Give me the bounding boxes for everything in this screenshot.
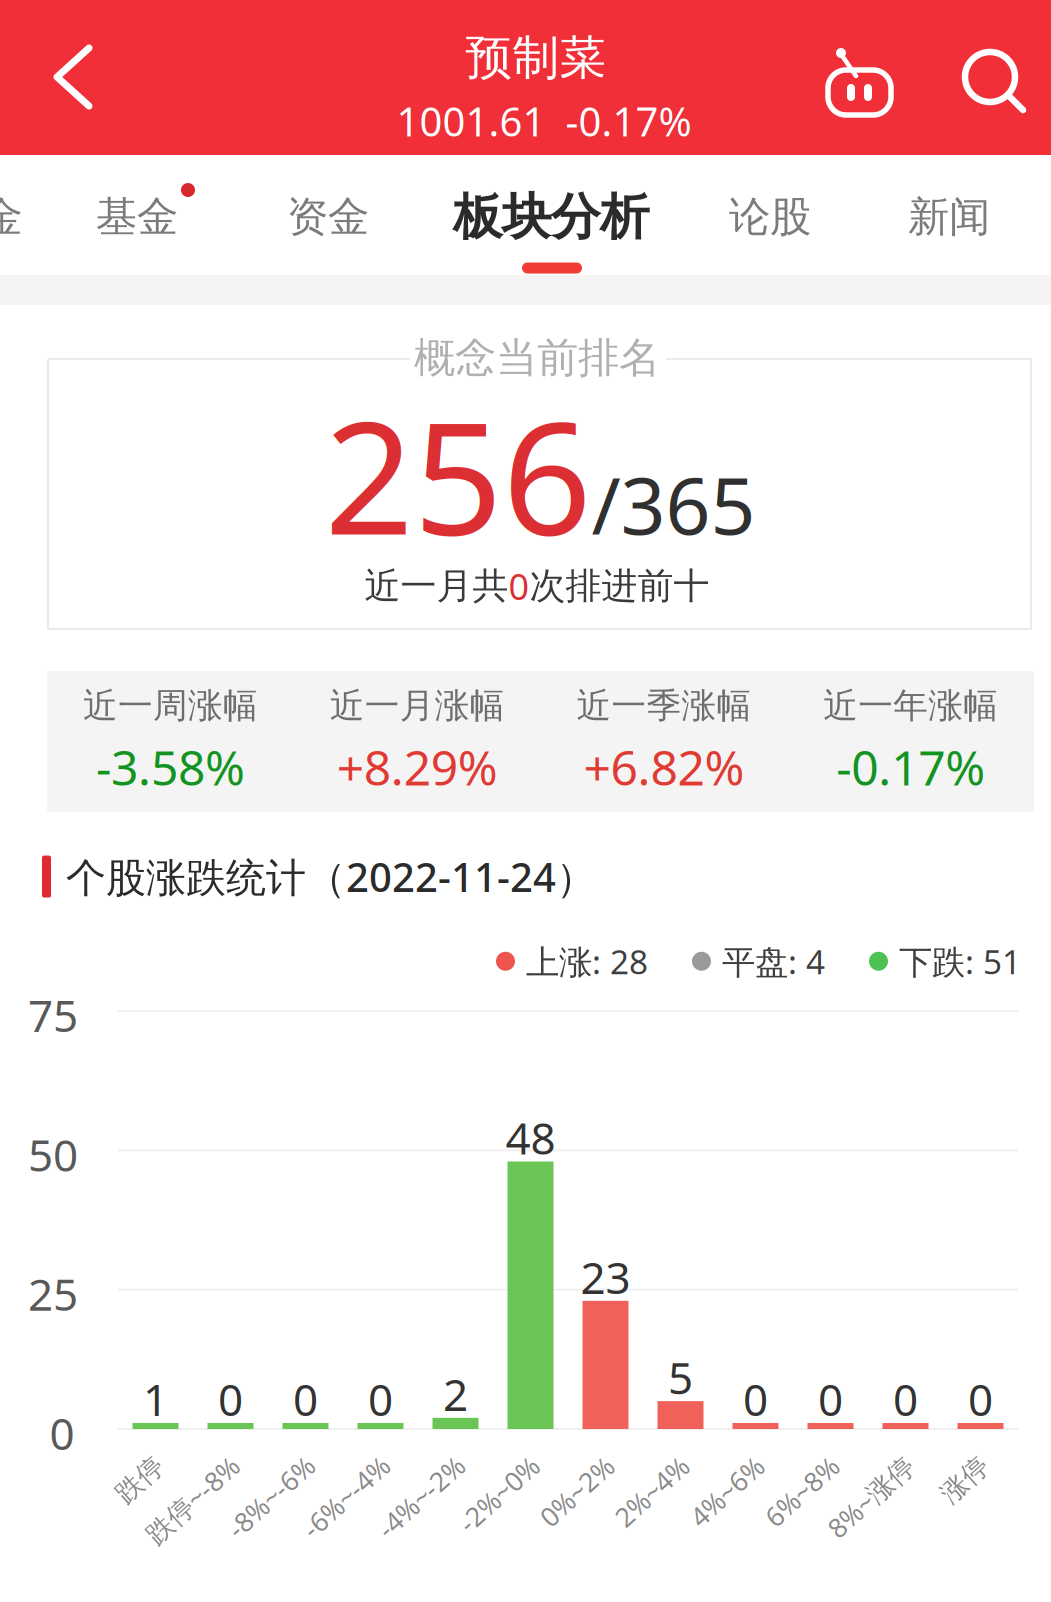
staticText: 概念当前排名 [414, 333, 660, 383]
staticText: -2%~0% [450, 1476, 548, 1512]
staticText: 资金 [287, 192, 369, 242]
staticText: 次排进前十 [529, 564, 709, 608]
staticText: 预制菜 [465, 29, 606, 87]
staticText: 涨停 [938, 1463, 992, 1496]
staticText: 75 [28, 986, 78, 1044]
staticText: 6%~8% [757, 1474, 846, 1509]
staticText: 近一月共 [364, 564, 508, 608]
button[interactable]: 论股 [700, 157, 840, 277]
staticText: -6%~-4% [292, 1479, 399, 1514]
button[interactable]: 板块分析 [436, 157, 666, 277]
button[interactable]: Search [940, 22, 1050, 142]
staticText: 基金 [96, 192, 178, 242]
staticText: 0 [293, 1370, 318, 1428]
staticText: 0 [968, 1370, 993, 1428]
staticText: -0.17% [836, 735, 985, 799]
staticText: 0 [743, 1370, 768, 1428]
staticText: 0 [218, 1370, 243, 1428]
staticText: 0%~2% [532, 1474, 621, 1509]
staticText: -8%~-6% [217, 1479, 324, 1514]
staticText: 近一周涨幅 [83, 684, 258, 727]
staticText: 0 [368, 1370, 393, 1428]
button[interactable]: 资金 [258, 157, 398, 277]
staticText: 1001.61 -0.17% [396, 94, 691, 147]
staticText: 个股涨跌统计（2022-11-24） [66, 850, 596, 903]
staticText: 下跌: 51 [899, 939, 1021, 983]
staticText: 近一年涨幅 [823, 684, 998, 727]
button[interactable]: 基金 [67, 157, 207, 277]
staticText: -3.58% [96, 735, 245, 799]
staticText: 上涨: 28 [526, 939, 648, 983]
staticText: +6.82% [583, 735, 744, 799]
staticText: 4%~6% [682, 1474, 771, 1509]
staticText: 256 [324, 370, 591, 578]
staticText: /365 [591, 452, 755, 556]
staticText: 0 [893, 1370, 918, 1428]
staticText: 25 [28, 1264, 78, 1323]
staticText: 2 [443, 1365, 468, 1423]
staticText: 平盘: 4 [722, 939, 825, 983]
staticText: 50 [28, 1125, 78, 1183]
staticText: 2%~4% [607, 1474, 696, 1509]
staticText: 板块分析 [453, 187, 649, 247]
staticText: 论股 [729, 192, 811, 242]
staticText: 0 [508, 562, 529, 610]
staticText: -4%~-2% [367, 1479, 474, 1514]
staticText: 近一月涨幅 [330, 684, 505, 727]
staticText: 跌停 [113, 1463, 167, 1496]
button[interactable]: Back [13, 0, 133, 154]
staticText: 48 [505, 1108, 555, 1167]
button[interactable]: AI assistant [807, 22, 917, 142]
staticText: 23 [580, 1248, 630, 1306]
staticText: 8%~涨停 [818, 1479, 924, 1514]
button[interactable]: 新闻 [879, 157, 1019, 277]
staticText: 新闻 [908, 192, 990, 242]
staticText: 跌停~-8% [135, 1482, 250, 1517]
staticText: 1 [143, 1370, 168, 1428]
staticText: 0 [818, 1370, 843, 1428]
staticText: 5 [668, 1348, 693, 1406]
staticText: 近一季涨幅 [576, 684, 751, 727]
staticText: +8.29% [337, 735, 498, 799]
staticText: 0 [49, 1404, 74, 1462]
staticText: 金 [0, 192, 22, 242]
